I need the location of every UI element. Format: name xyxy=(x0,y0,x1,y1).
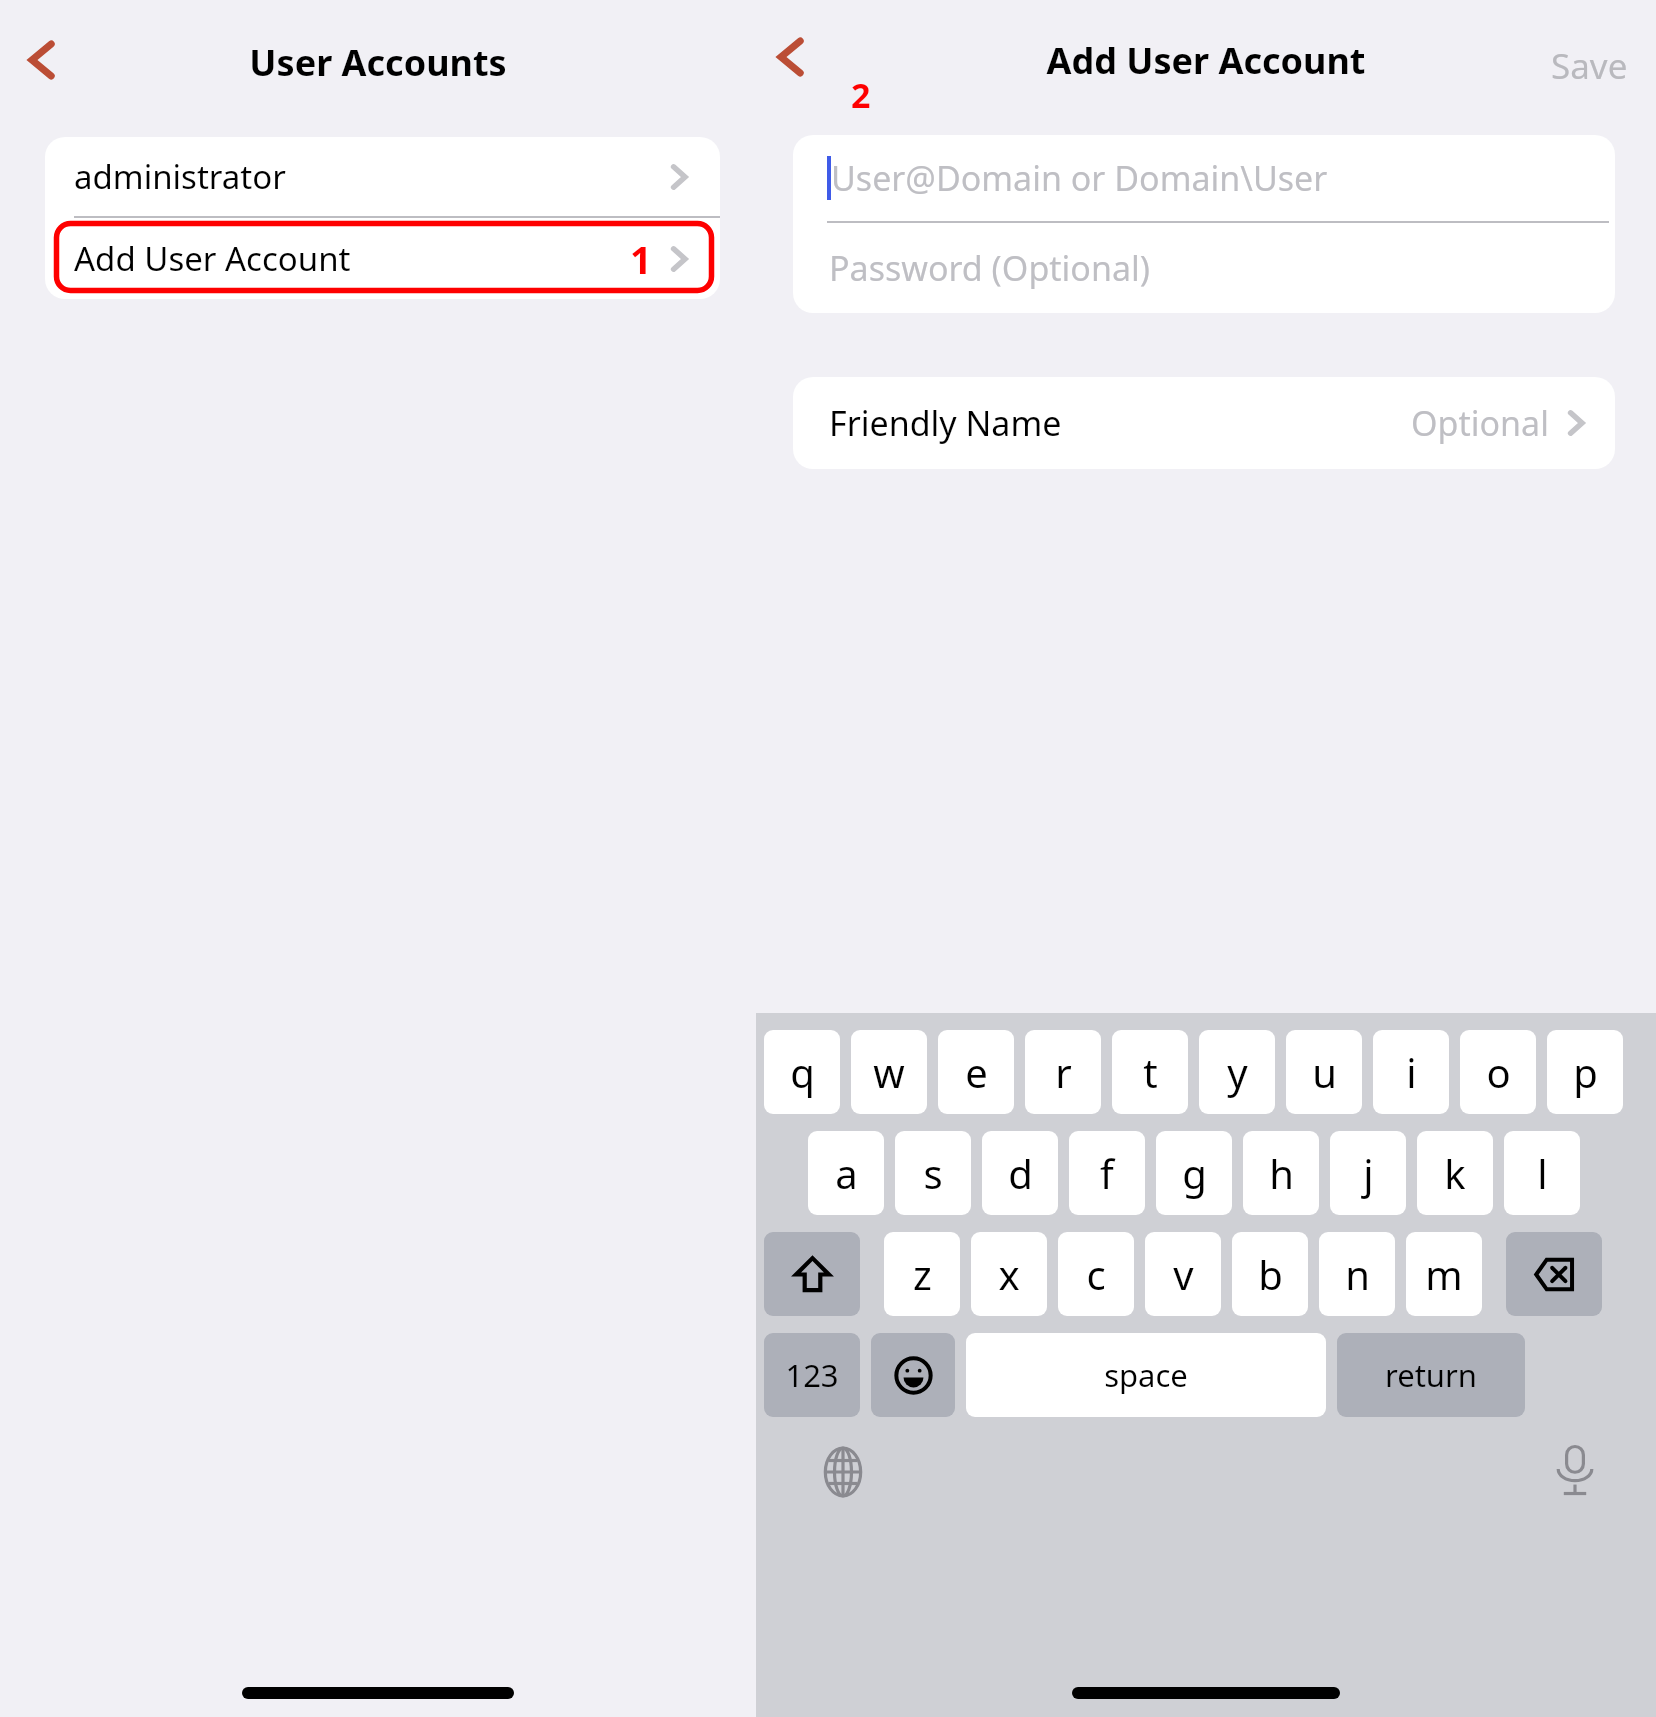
staticText: m xyxy=(1425,1247,1463,1301)
button[interactable]: k xyxy=(1417,1131,1493,1215)
button[interactable]: y xyxy=(1199,1030,1275,1114)
staticText: t xyxy=(1143,1045,1158,1099)
staticText: administrator xyxy=(74,154,664,199)
staticText: q xyxy=(790,1045,815,1099)
button[interactable]: Shift xyxy=(764,1232,860,1316)
button[interactable]: v xyxy=(1145,1232,1221,1316)
button[interactable]: Back xyxy=(12,30,72,90)
button[interactable]: u xyxy=(1286,1030,1362,1114)
button[interactable]: Add User Account xyxy=(45,218,720,299)
staticText: Password (Optional) xyxy=(829,245,1150,291)
staticText: l xyxy=(1537,1146,1548,1200)
button[interactable]: i xyxy=(1373,1030,1449,1114)
button[interactable]: z xyxy=(884,1232,960,1316)
staticText: 2 xyxy=(851,72,871,118)
staticText: d xyxy=(1008,1146,1033,1200)
staticText: Add User Account xyxy=(756,36,1656,85)
staticText: User Accounts xyxy=(0,38,756,87)
staticText: b xyxy=(1258,1247,1283,1301)
button[interactable]: e xyxy=(938,1030,1014,1114)
button[interactable]: Password (Optional) xyxy=(793,223,1615,313)
button[interactable]: b xyxy=(1232,1232,1308,1316)
button[interactable]: return xyxy=(1337,1333,1525,1417)
staticText: Optional xyxy=(1411,400,1549,446)
button[interactable]: h xyxy=(1243,1131,1319,1215)
staticText: n xyxy=(1345,1247,1370,1301)
button[interactable]: o xyxy=(1460,1030,1536,1114)
button[interactable]: d xyxy=(982,1131,1058,1215)
staticText: r xyxy=(1055,1045,1072,1099)
staticText: w xyxy=(873,1045,905,1099)
button[interactable]: m xyxy=(1406,1232,1482,1316)
button[interactable]: t xyxy=(1112,1030,1188,1114)
staticText: Add User Account xyxy=(74,236,630,281)
button[interactable]: space xyxy=(966,1333,1326,1417)
button[interactable]: r xyxy=(1025,1030,1101,1114)
button[interactable]: w xyxy=(851,1030,927,1114)
staticText: space xyxy=(1104,1354,1188,1396)
button[interactable]: j xyxy=(1330,1131,1406,1215)
button[interactable]: Delete xyxy=(1506,1232,1602,1316)
staticText: g xyxy=(1182,1146,1207,1200)
button[interactable]: Emoji xyxy=(871,1333,955,1417)
staticText: p xyxy=(1573,1045,1598,1099)
button[interactable]: p xyxy=(1547,1030,1623,1114)
button[interactable]: q xyxy=(764,1030,840,1114)
staticText: Save xyxy=(1551,42,1628,90)
staticText: u xyxy=(1312,1045,1337,1099)
button[interactable]: s xyxy=(895,1131,971,1215)
button[interactable]: x xyxy=(971,1232,1047,1316)
button[interactable]: Dictation xyxy=(1546,1441,1604,1499)
staticText: v xyxy=(1173,1247,1194,1301)
staticText: s xyxy=(923,1146,943,1200)
staticText: f xyxy=(1100,1146,1114,1200)
button[interactable]: Save xyxy=(1545,36,1634,96)
staticText: 123 xyxy=(785,1354,839,1396)
button[interactable]: g xyxy=(1156,1131,1232,1215)
button[interactable]: l xyxy=(1504,1131,1580,1215)
staticText: 1 xyxy=(630,233,652,285)
button[interactable]: f xyxy=(1069,1131,1145,1215)
staticText: h xyxy=(1269,1146,1294,1200)
staticText: User@Domain or Domain\User xyxy=(831,155,1328,201)
button[interactable]: administrator xyxy=(45,137,720,216)
staticText: j xyxy=(1363,1146,1374,1200)
staticText: x xyxy=(998,1247,1020,1301)
button[interactable]: User@Domain or Domain\User xyxy=(793,135,1615,221)
staticText: y xyxy=(1227,1045,1248,1099)
staticText: z xyxy=(913,1247,932,1301)
button[interactable]: Friendly Name xyxy=(793,377,1615,469)
button[interactable]: n xyxy=(1319,1232,1395,1316)
button[interactable]: a xyxy=(808,1131,884,1215)
button[interactable]: c xyxy=(1058,1232,1134,1316)
staticText: e xyxy=(965,1045,988,1099)
button[interactable]: Next keyboard xyxy=(814,1443,872,1501)
staticText: o xyxy=(1486,1045,1511,1099)
staticText: return xyxy=(1385,1354,1477,1396)
staticText: Friendly Name xyxy=(829,400,1411,446)
button[interactable]: Back xyxy=(761,27,821,87)
staticText: i xyxy=(1406,1045,1417,1099)
staticText: c xyxy=(1086,1247,1106,1301)
staticText: k xyxy=(1444,1146,1466,1200)
staticText: a xyxy=(835,1146,858,1200)
button[interactable]: 123 xyxy=(764,1333,860,1417)
